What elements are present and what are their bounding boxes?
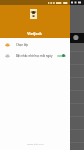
staticText: Phiên bản 3.4.2 <box>27 143 44 146</box>
button[interactable]: Chọn lớp <box>0 39 70 50</box>
staticText: Bật nhắc nhở học mỗi ngày <box>16 54 53 58</box>
staticText: VietJack <box>27 31 42 36</box>
staticText: Chọn lớp <box>16 43 28 47</box>
button[interactable]: Toggle daily reminder <box>57 53 66 58</box>
other: VietJack logo <box>30 9 37 19</box>
button[interactable]: Bật nhắc nhở học mỗi ngày <box>0 50 70 61</box>
